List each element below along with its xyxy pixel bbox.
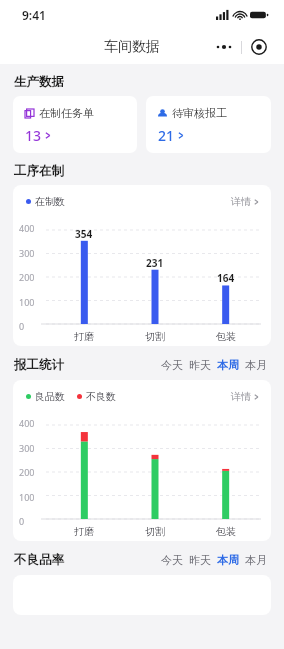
button[interactable]: 待审核报工 — [146, 96, 271, 153]
button[interactable]: 本月 — [242, 356, 270, 374]
staticText: 待审核报工 — [172, 106, 227, 120]
staticText: 昨天 — [189, 358, 211, 372]
staticText: 打磨 — [74, 330, 94, 343]
staticText: 231 — [146, 256, 164, 270]
button[interactable]: 详情 — [231, 390, 259, 403]
staticText: 今天 — [161, 358, 183, 372]
button[interactable]: 本周 — [214, 356, 242, 374]
staticText: 切割 — [145, 525, 165, 538]
button[interactable]: 本月 — [242, 551, 270, 569]
staticText: 0 — [19, 320, 25, 332]
staticText: 400 — [19, 222, 35, 234]
staticText: 良品数 — [35, 390, 65, 403]
staticText: 本月 — [245, 358, 267, 372]
staticText: 报工统计 — [14, 357, 64, 373]
staticText: 21 — [158, 126, 175, 145]
staticText: 切割 — [145, 330, 165, 343]
staticText: 200 — [19, 271, 35, 283]
button[interactable]: 昨天 — [186, 551, 214, 569]
staticText: 300 — [19, 442, 35, 454]
staticText: 100 — [19, 491, 35, 503]
staticText: 164 — [217, 271, 235, 285]
staticText: 不良数 — [86, 390, 116, 403]
staticText: 本月 — [245, 553, 267, 567]
staticText: 200 — [19, 466, 35, 478]
staticText: 354 — [75, 227, 93, 241]
staticText: 包装 — [216, 525, 236, 538]
staticText: 车间数据 — [104, 38, 160, 56]
button[interactable]: 今天 — [158, 551, 186, 569]
staticText: 详情 — [231, 195, 251, 208]
button[interactable]: 详情 — [231, 195, 259, 208]
button[interactable]: More options — [211, 36, 237, 58]
staticText: 400 — [19, 417, 35, 429]
staticText: 13 — [25, 126, 42, 145]
staticText: 100 — [19, 296, 35, 308]
staticText: 详情 — [231, 390, 251, 403]
button[interactable]: 在制任务单 — [13, 96, 137, 153]
button[interactable]: 昨天 — [186, 356, 214, 374]
staticText: 打磨 — [74, 525, 94, 538]
staticText: 生产数据 — [14, 74, 64, 90]
staticText: 本周 — [217, 553, 239, 567]
staticText: 本周 — [217, 358, 239, 372]
staticText: 0 — [19, 515, 25, 527]
button[interactable]: 本周 — [214, 551, 242, 569]
staticText: 9:41 — [22, 7, 46, 23]
staticText: 今天 — [161, 553, 183, 567]
button[interactable]: Close — [246, 34, 272, 60]
button[interactable]: 今天 — [158, 356, 186, 374]
staticText: 不良品率 — [14, 552, 64, 568]
staticText: 在制任务单 — [39, 106, 94, 120]
staticText: 包装 — [216, 330, 236, 343]
staticText: 昨天 — [189, 553, 211, 567]
staticText: 300 — [19, 247, 35, 259]
staticText: 在制数 — [35, 195, 65, 208]
staticText: 工序在制 — [14, 163, 64, 179]
